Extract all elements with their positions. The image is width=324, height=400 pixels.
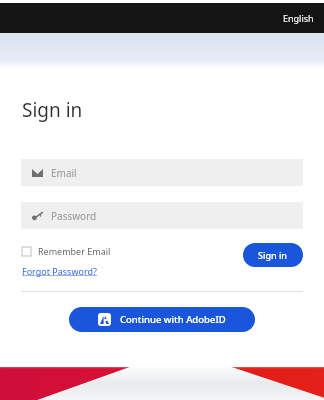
button[interactable]: Remember Email [22,245,111,257]
staticText: English [283,12,314,24]
other: Email [32,169,43,177]
staticText: Sign in [22,97,83,123]
button[interactable]: Sign in [243,243,303,267]
button[interactable]: Password [21,202,303,229]
staticText: Sign in [258,249,288,261]
button[interactable]: Continue with AdobeID [69,307,255,332]
staticText: Password [51,209,97,223]
staticText: Remember Email [38,245,111,257]
button[interactable]: Email [21,159,303,186]
staticText: Forgot Password? [22,265,97,277]
staticText: Continue with AdobeID [120,313,226,326]
staticText: Email [51,166,77,180]
other: Password [32,211,43,220]
button[interactable]: English [273,6,324,30]
button[interactable]: Forgot Password? [22,265,97,277]
